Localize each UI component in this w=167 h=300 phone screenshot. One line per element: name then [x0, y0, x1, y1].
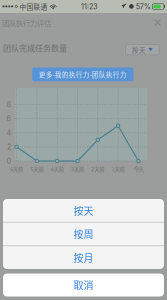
- button[interactable]: 取消: [3, 273, 164, 296]
- staticText: 按周: [73, 227, 93, 241]
- staticText: 4天前: [51, 165, 64, 173]
- staticText: 按天: [132, 45, 146, 55]
- staticText: 按天: [73, 203, 93, 218]
- staticText: 2: [7, 142, 11, 151]
- staticText: 1天前: [112, 165, 125, 173]
- staticText: 今天: [133, 165, 143, 173]
- staticText: 团队执行力评估: [2, 17, 51, 28]
- staticText: 6: [6, 114, 11, 123]
- staticText: 5天前: [30, 165, 43, 173]
- staticText: 按月: [73, 250, 93, 265]
- staticText: 2天前: [91, 165, 104, 173]
- staticText: 3天前: [71, 165, 84, 173]
- staticText: 11:23: [81, 2, 98, 11]
- staticText: 4: [6, 128, 11, 137]
- button[interactable]: 关闭: [149, 14, 165, 30]
- staticText: 取消: [73, 278, 93, 292]
- button[interactable]: 按周: [3, 222, 164, 245]
- staticText: 57%: [136, 2, 151, 11]
- staticText: 更多-我的执行力-团队执行力: [39, 70, 127, 79]
- staticText: 8: [6, 100, 11, 109]
- button[interactable]: 按月: [3, 246, 164, 269]
- staticText: 0: [6, 157, 11, 165]
- staticText: 6天前: [10, 165, 23, 173]
- button[interactable]: 按天: [3, 199, 164, 222]
- button[interactable]: 按天: [126, 45, 159, 55]
- staticText: 团队完成任务数量: [3, 42, 67, 54]
- staticText: 中国联通: [20, 2, 48, 11]
